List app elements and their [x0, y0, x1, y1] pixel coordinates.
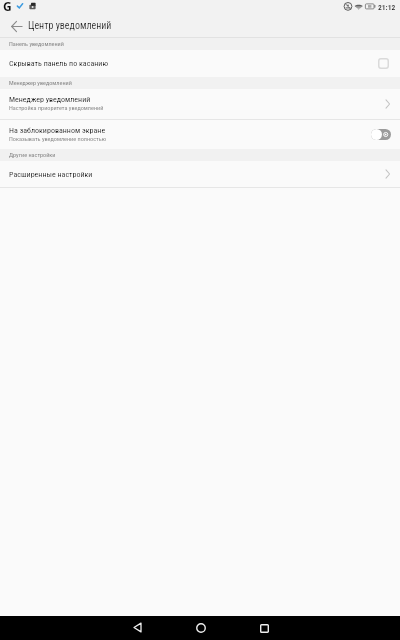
- staticText: Центр уведомлений: [28, 20, 112, 32]
- staticText: Расширенные настройки: [9, 170, 93, 179]
- button[interactable]: Назад: [0, 15, 28, 38]
- staticText: Другие настройки: [9, 151, 56, 158]
- staticText: G: [3, 0, 12, 12]
- button[interactable]: Менеджер уведомлений: [0, 89, 400, 119]
- staticText: Менеджер уведомлений: [9, 95, 91, 104]
- staticText: 21:12: [378, 3, 396, 12]
- button[interactable]: Главный экран: [178, 616, 222, 640]
- button[interactable]: На заблокированном экране: [0, 120, 400, 149]
- staticText: На заблокированном экране: [9, 126, 106, 135]
- button[interactable]: Обзор: [242, 616, 286, 640]
- button[interactable]: Переключатель: [371, 129, 391, 140]
- button[interactable]: Назад: [114, 616, 158, 640]
- staticText: Показывать уведомление полностью: [9, 135, 107, 142]
- staticText: Менеджер уведомлений: [9, 79, 72, 86]
- staticText: Скрывать панель по касанию: [9, 59, 378, 68]
- staticText: Настройка приоритета уведомлений: [9, 104, 104, 111]
- button[interactable]: Расширенные настройки: [0, 161, 400, 187]
- staticText: Панель уведомлений: [9, 40, 64, 47]
- button[interactable]: Скрывать панель по касанию: [0, 50, 400, 77]
